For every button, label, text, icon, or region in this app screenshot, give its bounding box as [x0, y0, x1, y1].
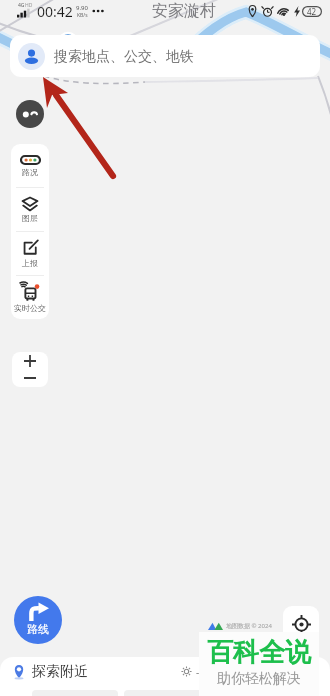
- staticText: 探索附近: [32, 663, 88, 681]
- staticText: 实时公交: [14, 303, 46, 313]
- button[interactable]: 实时公交: [11, 276, 49, 319]
- staticText: KB/s: [77, 12, 88, 19]
- staticText: 42: [307, 6, 317, 17]
- button[interactable]: Avatar: [16, 100, 44, 128]
- button[interactable]: 图层: [11, 188, 49, 231]
- staticText: 助你轻松解决: [217, 670, 301, 688]
- staticText: 百科全说: [207, 636, 311, 669]
- button[interactable]: 路线: [14, 596, 62, 644]
- staticText: 安家漩村: [152, 1, 216, 21]
- staticText: 4G: [18, 2, 25, 9]
- staticText: 图层: [22, 213, 38, 223]
- staticText: 地图数据 © 2024: [226, 622, 272, 630]
- staticText: 00:42: [37, 2, 73, 21]
- staticText: 路线: [27, 622, 49, 636]
- button[interactable]: Zoom out: [12, 369, 48, 387]
- staticText: 搜索地点、公交、地铁: [54, 48, 194, 66]
- button[interactable]: 探索附近: [13, 663, 88, 681]
- button[interactable]: Zoom in: [12, 352, 48, 369]
- staticText: HD: [25, 2, 33, 9]
- staticText: -·: [196, 665, 202, 679]
- staticText: 9.90: [76, 4, 88, 12]
- button[interactable]: My location: [283, 606, 319, 642]
- button[interactable]: 路况: [11, 144, 49, 187]
- staticText: 路况: [22, 167, 38, 177]
- button[interactable]: 上报: [11, 232, 49, 275]
- button[interactable]: 搜索地点、公交、地铁: [10, 35, 320, 77]
- button[interactable]: [124, 690, 209, 696]
- staticText: 上报: [22, 258, 38, 268]
